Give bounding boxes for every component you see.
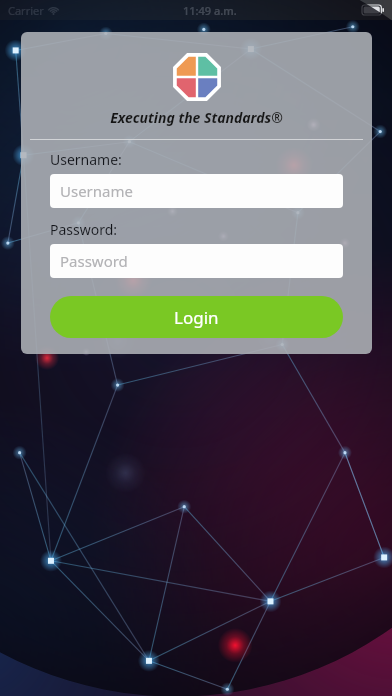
button[interactable]: Password xyxy=(50,244,343,278)
staticText: Username xyxy=(60,181,133,201)
staticText: Carrier xyxy=(8,3,44,18)
staticText: Password: xyxy=(50,220,118,239)
button[interactable]: Login xyxy=(50,296,343,338)
staticText: Executing the Standards® xyxy=(110,108,283,127)
staticText: Password xyxy=(60,251,128,271)
staticText: 11:49 a.m. xyxy=(183,3,237,18)
button[interactable]: Username xyxy=(50,174,343,208)
staticText: Username: xyxy=(50,150,122,169)
staticText: Login xyxy=(174,306,219,329)
